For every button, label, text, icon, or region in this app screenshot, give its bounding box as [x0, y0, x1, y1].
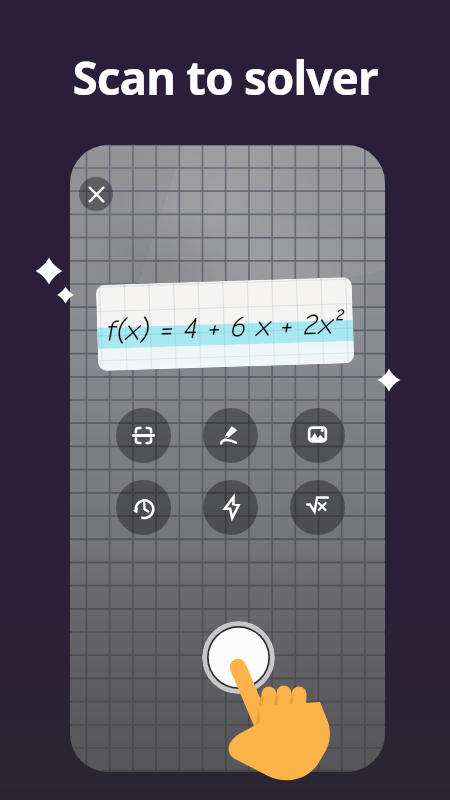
button[interactable]: Close: [79, 177, 113, 211]
button[interactable]: Draw: [203, 408, 258, 463]
button[interactable]: Flash: [203, 480, 258, 535]
button[interactable]: Gallery: [290, 408, 345, 463]
button[interactable]: History: [116, 480, 171, 535]
staticText: Scan to solver: [0, 46, 450, 109]
button[interactable]: Scan text: [116, 408, 171, 463]
staticText: f(x) = 4 + 6 x + 2x²: [107, 306, 345, 348]
button[interactable]: Math keyboard: [290, 480, 345, 535]
button[interactable]: Take photo: [202, 621, 275, 694]
